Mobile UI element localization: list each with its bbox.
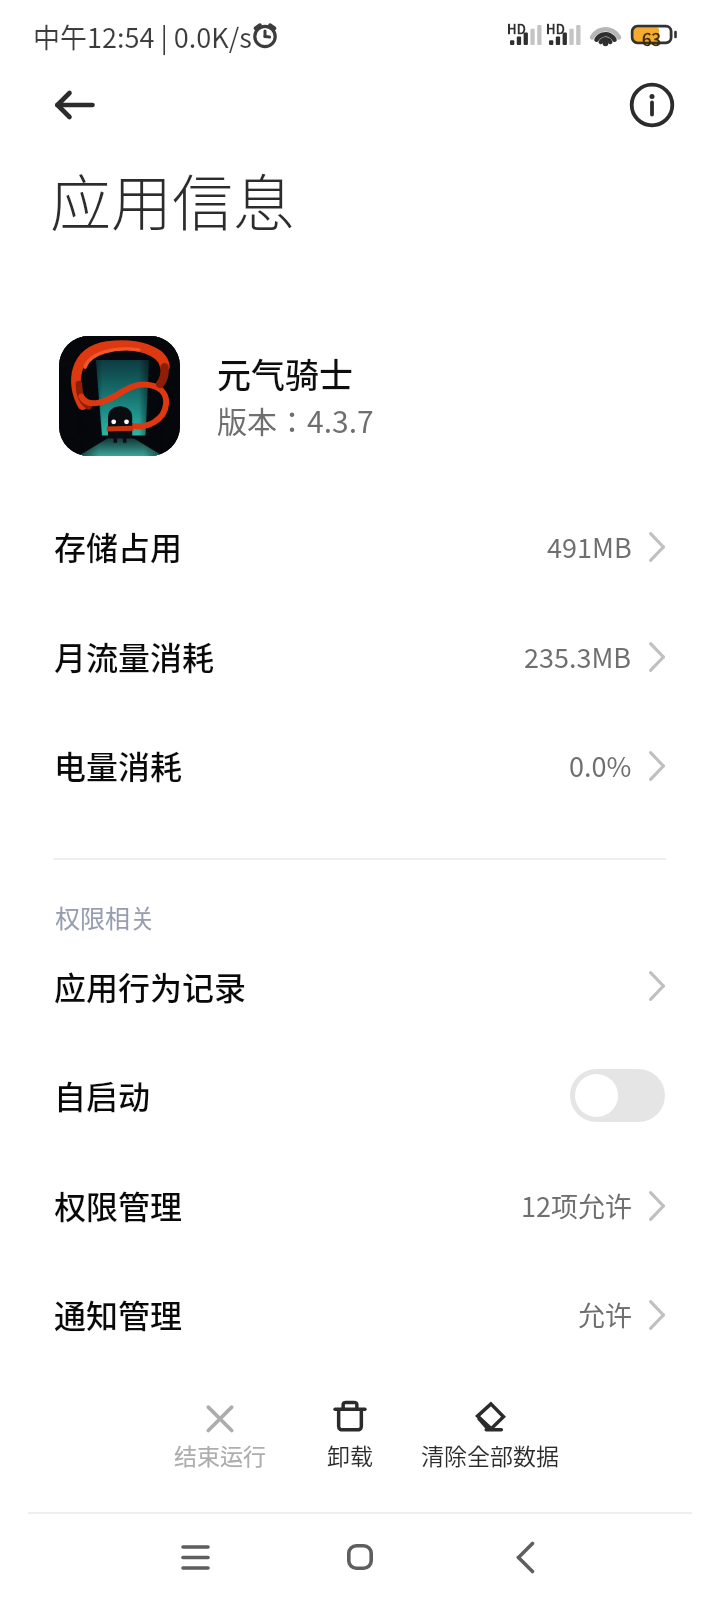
staticText: HD — [507, 19, 526, 38]
button[interactable]: 月流量消耗 — [0, 602, 720, 710]
button[interactable]: 电量消耗 — [0, 711, 720, 819]
staticText: 元气骑士 — [217, 349, 353, 398]
button[interactable]: Back — [46, 77, 102, 133]
staticText: 0.0% — [569, 746, 632, 785]
staticText: 63 — [642, 26, 661, 51]
staticText: HD — [546, 19, 565, 38]
button[interactable]: App info details — [624, 77, 680, 133]
staticText: 权限管理 — [54, 1182, 183, 1228]
button[interactable]: 卸载 — [250, 1399, 450, 1499]
button[interactable]: Recent apps — [135, 1514, 255, 1600]
staticText: 491MB — [547, 527, 632, 566]
staticText: 允许 — [578, 1295, 632, 1334]
button[interactable]: 存储占用 — [0, 492, 720, 600]
staticText: 通知管理 — [54, 1291, 183, 1337]
staticText: 中午12:54 | 0.0K/s — [33, 17, 252, 56]
staticText: 权限相关 — [55, 899, 156, 935]
staticText: 清除全部数据 — [421, 1438, 559, 1471]
staticText: 结束运行 — [174, 1438, 266, 1471]
staticText: 月流量消耗 — [54, 633, 215, 679]
staticText: 应用信息 — [50, 155, 295, 243]
staticText: 12项允许 — [521, 1186, 632, 1225]
button[interactable]: 通知管理 — [0, 1260, 720, 1368]
staticText: 卸载 — [327, 1438, 373, 1471]
staticText: 存储占用 — [54, 523, 183, 569]
button[interactable]: 清除全部数据 — [390, 1399, 590, 1499]
button[interactable]: Auto-start toggle, off — [570, 1069, 665, 1122]
staticText: 235.3MB — [524, 637, 632, 676]
button[interactable]: 结束运行 — [120, 1399, 320, 1499]
button[interactable]: 应用行为记录 — [0, 932, 720, 1040]
button[interactable]: 自启动 — [0, 1041, 720, 1149]
button[interactable]: Back — [465, 1514, 585, 1600]
button[interactable]: Home — [300, 1514, 420, 1600]
button[interactable]: 权限管理 — [0, 1151, 720, 1259]
staticText: 电量消耗 — [54, 742, 183, 788]
staticText: 应用行为记录 — [54, 963, 247, 1009]
staticText: 自启动 — [54, 1072, 151, 1118]
staticText: 版本：4.3.7 — [217, 398, 374, 441]
